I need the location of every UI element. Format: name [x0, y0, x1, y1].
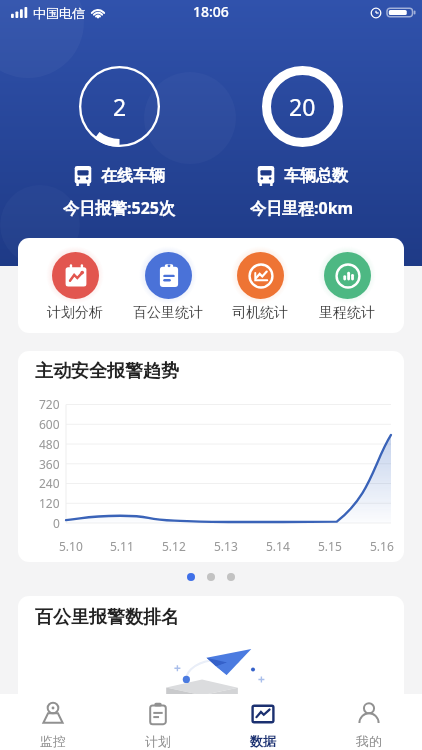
button[interactable]: 百公里统计: [133, 238, 203, 333]
staticText: 在线车辆: [101, 166, 165, 186]
staticText: 480: [39, 436, 60, 452]
staticText: 中国电信: [33, 5, 85, 21]
staticText: 20: [289, 91, 316, 122]
staticText: 0: [53, 515, 60, 531]
staticText: 车辆总数: [284, 166, 348, 186]
staticText: 监控: [40, 733, 66, 749]
staticText: 5.12: [162, 538, 186, 554]
staticText: 今日里程:0km: [250, 197, 354, 219]
staticText: 百公里统计: [133, 304, 203, 322]
staticText: 数据: [250, 733, 276, 749]
staticText: 5.14: [266, 538, 290, 554]
button[interactable]: 我的: [316, 694, 422, 750]
staticText: 600: [39, 416, 60, 432]
staticText: 5.16: [370, 538, 394, 554]
staticText: 里程统计: [319, 304, 375, 322]
staticText: 司机统计: [232, 304, 288, 322]
staticText: 5.10: [59, 538, 83, 554]
button[interactable]: 数据: [210, 694, 316, 750]
button[interactable]: 计划分析: [46, 238, 104, 333]
staticText: 百公里报警数排名: [35, 606, 179, 629]
button[interactable]: 监控: [0, 694, 105, 750]
button[interactable]: 计划: [105, 694, 210, 750]
staticText: 5.15: [318, 538, 342, 554]
staticText: 2: [113, 91, 127, 122]
staticText: 18:06: [193, 2, 229, 21]
staticText: 240: [39, 475, 60, 491]
staticText: 主动安全报警趋势: [35, 360, 179, 383]
staticText: 5.13: [214, 538, 238, 554]
staticText: 计划: [145, 733, 171, 749]
button[interactable]: 里程统计: [318, 238, 376, 333]
staticText: 5.11: [110, 538, 134, 554]
staticText: 计划分析: [47, 304, 103, 322]
button[interactable]: 司机统计: [231, 238, 289, 333]
staticText: 720: [39, 396, 60, 412]
staticText: 120: [39, 495, 60, 511]
staticText: 今日报警:525次: [63, 197, 175, 219]
staticText: 360: [39, 456, 60, 472]
staticText: 我的: [356, 733, 382, 749]
